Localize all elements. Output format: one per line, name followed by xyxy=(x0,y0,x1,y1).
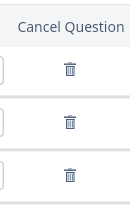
staticText: Cancel Question xyxy=(17,17,125,36)
button[interactable]: Delete answer xyxy=(0,152,130,201)
button[interactable] xyxy=(0,161,4,190)
button[interactable]: Cancel Question xyxy=(0,5,130,47)
button[interactable]: Delete answer xyxy=(0,99,130,148)
button[interactable]: Delete answer xyxy=(0,47,130,95)
button[interactable]: Delete answer xyxy=(60,59,80,79)
button[interactable]: Delete answer xyxy=(60,165,80,185)
button[interactable]: Delete answer xyxy=(60,112,80,132)
button[interactable] xyxy=(0,108,4,137)
button[interactable] xyxy=(0,56,4,85)
